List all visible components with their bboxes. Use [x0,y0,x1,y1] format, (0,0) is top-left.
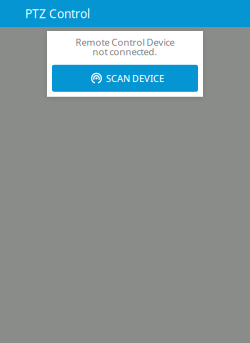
staticText: Remote Control Device [75,36,174,48]
staticText: PTZ Control [25,5,90,21]
staticText: not connected. [92,45,157,58]
button[interactable]: SCAN DEVICE [52,65,198,92]
staticText: SCAN DEVICE [106,72,164,84]
